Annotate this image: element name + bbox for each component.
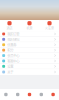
button[interactable]: 会员中心 xyxy=(0,53,59,58)
staticText: 优惠券 xyxy=(7,42,16,47)
button[interactable]: 酒店 xyxy=(1,21,18,31)
staticText: 关于 xyxy=(7,70,13,74)
button[interactable]: 消息 xyxy=(35,89,47,100)
button[interactable]: 机票 xyxy=(21,21,38,31)
button[interactable]: 首页 xyxy=(0,89,12,100)
button[interactable]: 设置 xyxy=(0,64,59,69)
button[interactable]: 火车票 xyxy=(41,21,58,31)
button[interactable]: 我的订单 xyxy=(0,31,59,37)
staticText: 酒店 xyxy=(6,26,12,30)
staticText: 客服中心 xyxy=(7,58,19,63)
button[interactable]: 行程 xyxy=(24,89,35,100)
button[interactable]: 积分 xyxy=(0,48,59,53)
staticText: 火车票 xyxy=(45,26,54,30)
staticText: 我的订单 xyxy=(7,31,19,36)
staticText: 我的钱包 xyxy=(7,37,19,42)
button[interactable]: 优惠券 xyxy=(0,42,59,48)
button[interactable]: 发现 xyxy=(12,89,24,100)
staticText: 设置 xyxy=(7,64,13,69)
staticText: 会员中心 xyxy=(7,53,19,58)
staticText: 机票 xyxy=(26,26,32,30)
button[interactable]: 客服中心 xyxy=(0,58,59,64)
button[interactable]: 关于 xyxy=(0,69,59,75)
staticText: 积分 xyxy=(7,48,13,52)
button[interactable]: 我的钱包 xyxy=(0,37,59,42)
button[interactable]: 我的 xyxy=(47,89,59,100)
